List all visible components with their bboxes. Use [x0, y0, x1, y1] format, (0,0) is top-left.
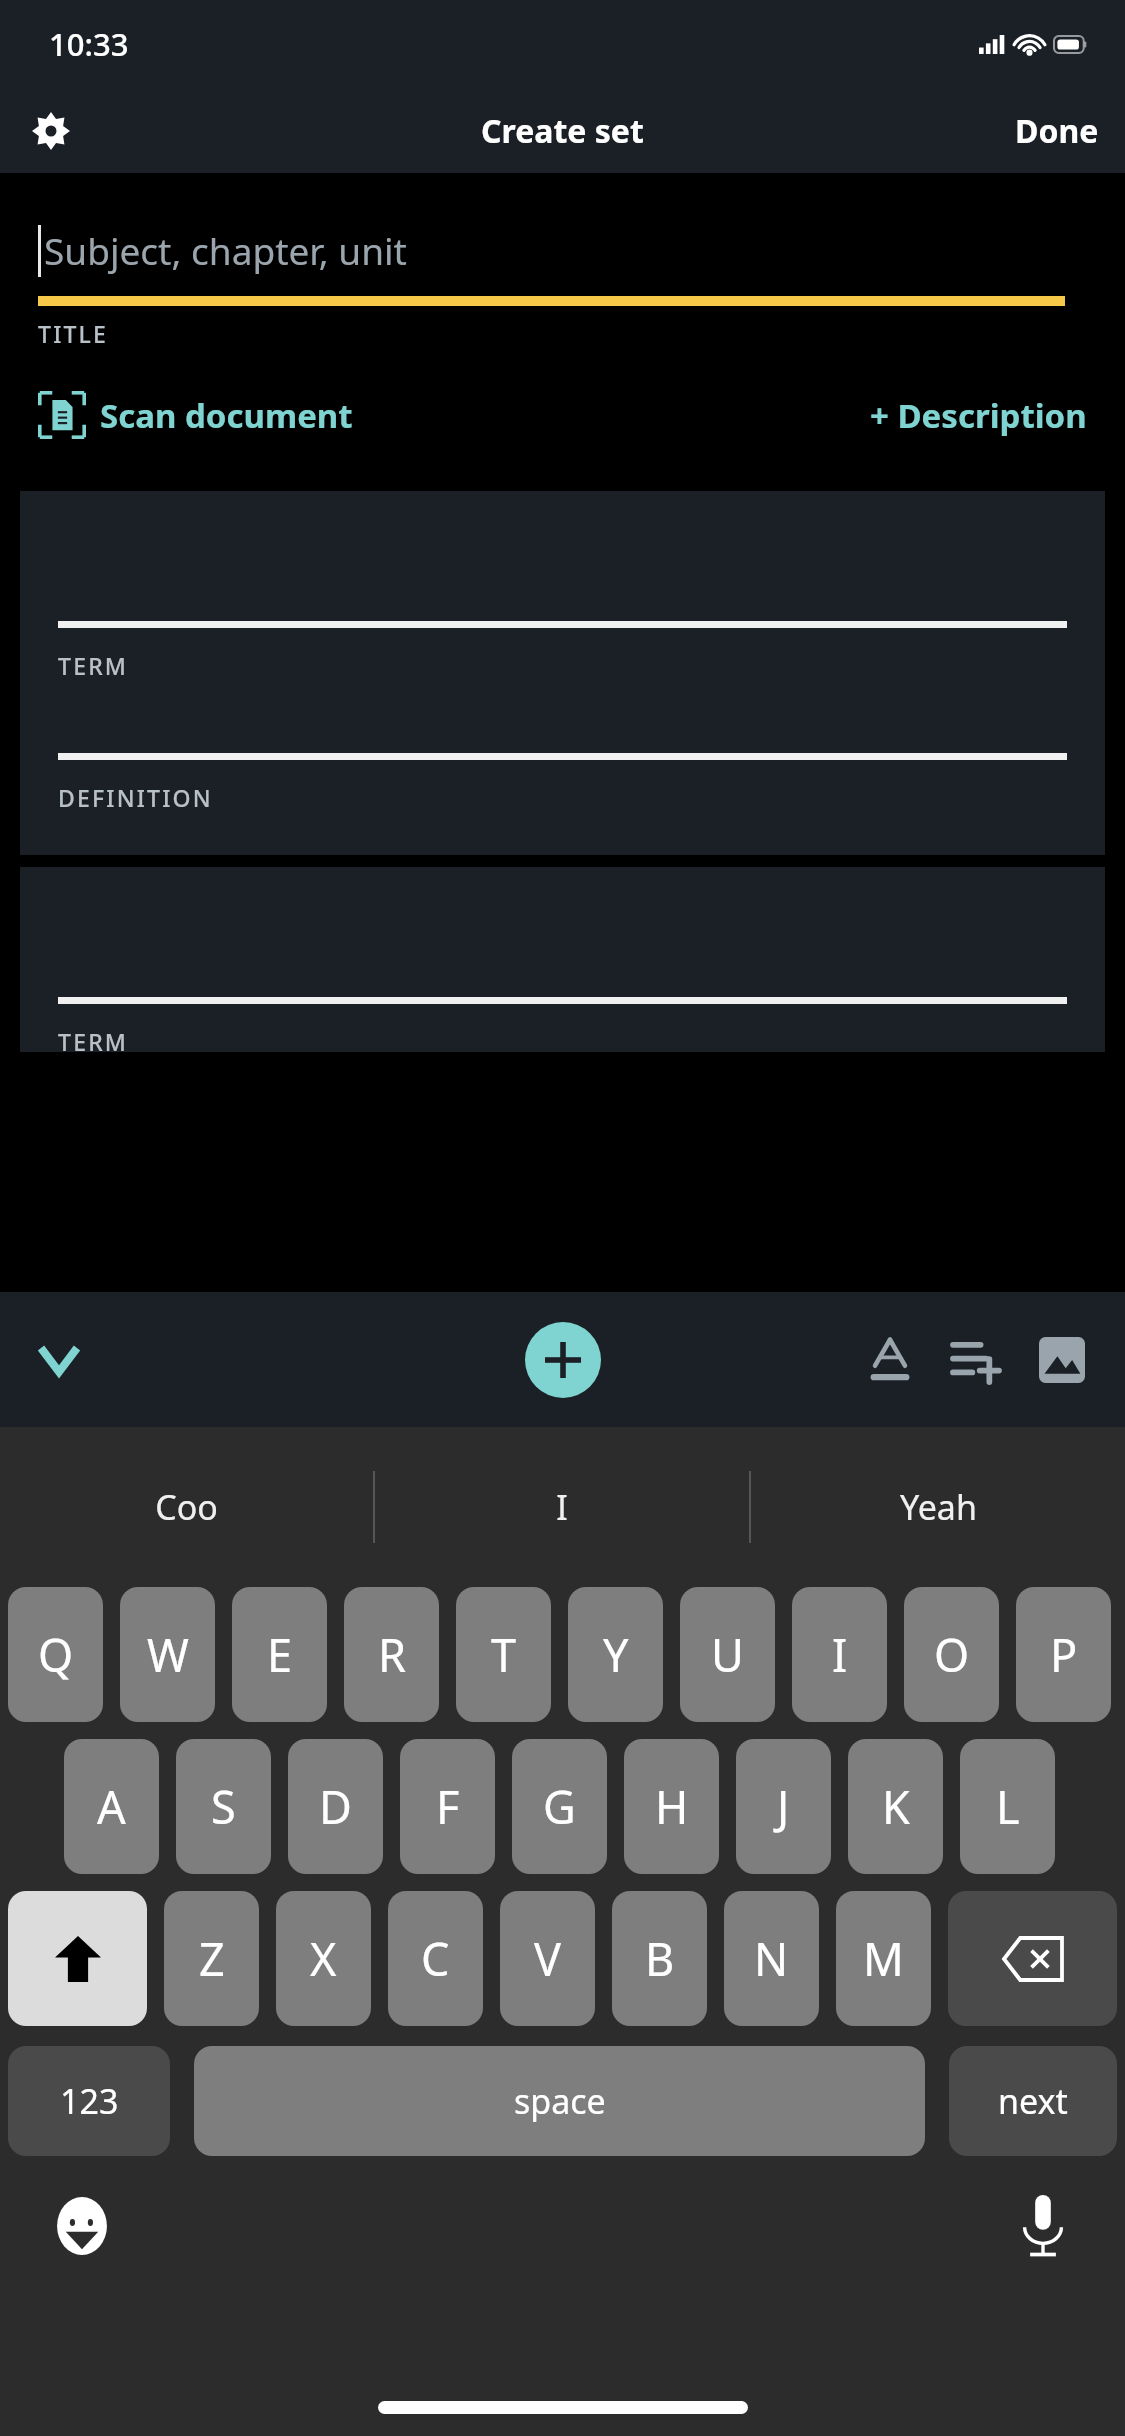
button[interactable]: next — [949, 2046, 1117, 2156]
staticText: J — [777, 1776, 790, 1837]
staticText: K — [882, 1776, 910, 1837]
button[interactable]: Q — [8, 1587, 103, 1722]
button[interactable]: Add card — [525, 1322, 601, 1398]
button[interactable]: R — [344, 1587, 439, 1722]
button[interactable]: + Description — [870, 393, 1087, 438]
staticText: T — [491, 1624, 517, 1685]
staticText: Yeah — [900, 1484, 977, 1530]
staticText: 123 — [60, 2078, 119, 2124]
staticText: M — [863, 1928, 904, 1989]
button[interactable]: Voice input — [1003, 2186, 1083, 2266]
button[interactable]: N — [724, 1891, 819, 2026]
staticText: F — [436, 1776, 460, 1837]
staticText: DEFINITION — [58, 782, 213, 813]
button[interactable]: 123 — [8, 2046, 170, 2156]
staticText: TERM — [58, 1026, 129, 1052]
button[interactable]: M — [836, 1891, 931, 2026]
button[interactable]: TERM — [20, 491, 1105, 855]
staticText: U — [711, 1624, 744, 1685]
button[interactable]: S — [176, 1739, 271, 1874]
staticText: 10:33 — [49, 23, 129, 65]
button[interactable]: I — [375, 1427, 749, 1587]
button[interactable]: Shift — [8, 1891, 147, 2026]
button[interactable]: E — [232, 1587, 327, 1722]
button[interactable]: V — [500, 1891, 595, 2026]
staticText: Coo — [155, 1484, 218, 1530]
button[interactable]: K — [848, 1739, 943, 1874]
staticText: I — [556, 1484, 568, 1530]
staticText: Done — [1015, 109, 1099, 153]
button[interactable]: C — [388, 1891, 483, 2026]
staticText: E — [267, 1624, 293, 1685]
button[interactable]: Collapse keyboard — [24, 1325, 94, 1395]
button[interactable]: P — [1016, 1587, 1111, 1722]
button[interactable]: O — [904, 1587, 999, 1722]
staticText: W — [147, 1624, 189, 1685]
staticText: TITLE — [38, 318, 109, 349]
button[interactable]: Coo — [0, 1427, 373, 1587]
staticText: space — [514, 2078, 606, 2124]
staticText: Scan document — [100, 393, 353, 438]
button[interactable]: TERM — [20, 867, 1105, 1052]
button[interactable]: Backspace — [948, 1891, 1117, 2026]
button[interactable]: I — [792, 1587, 887, 1722]
staticText: R — [378, 1624, 406, 1685]
button[interactable]: U — [680, 1587, 775, 1722]
staticText: Subject, chapter, unit — [44, 225, 407, 275]
button[interactable]: X — [276, 1891, 371, 2026]
button[interactable]: J — [736, 1739, 831, 1874]
button[interactable]: Emoji — [42, 2186, 122, 2266]
staticText: X — [310, 1928, 337, 1989]
button[interactable]: Y — [568, 1587, 663, 1722]
button[interactable]: Text formatting — [847, 1317, 933, 1403]
staticText: S — [211, 1776, 236, 1837]
button[interactable]: T — [456, 1587, 551, 1722]
staticText: O — [934, 1624, 970, 1685]
button[interactable]: D — [288, 1739, 383, 1874]
staticText: TERM — [58, 650, 129, 681]
staticText: V — [534, 1928, 562, 1989]
staticText: I — [832, 1624, 848, 1685]
staticText: B — [645, 1928, 675, 1989]
button[interactable]: F — [400, 1739, 495, 1874]
staticText: Create set — [481, 109, 644, 153]
button[interactable]: W — [120, 1587, 215, 1722]
button[interactable]: Scan document — [38, 391, 353, 439]
staticText: L — [996, 1776, 1020, 1837]
button[interactable]: G — [512, 1739, 607, 1874]
staticText: A — [97, 1776, 126, 1837]
staticText: + Description — [870, 393, 1087, 438]
button[interactable]: Z — [164, 1891, 259, 2026]
staticText: P — [1050, 1624, 1078, 1685]
button[interactable]: Add list item — [933, 1317, 1019, 1403]
button[interactable]: Yeah — [751, 1427, 1125, 1587]
staticText: C — [421, 1928, 450, 1989]
button[interactable]: Add image — [1019, 1317, 1105, 1403]
button[interactable]: space — [194, 2046, 925, 2156]
button[interactable]: L — [960, 1739, 1055, 1874]
staticText: H — [655, 1776, 689, 1837]
staticText: G — [543, 1776, 576, 1837]
button[interactable]: H — [624, 1739, 719, 1874]
button[interactable]: B — [612, 1891, 707, 2026]
staticText: Y — [603, 1624, 629, 1685]
staticText: Z — [199, 1928, 225, 1989]
button[interactable]: Done — [989, 95, 1125, 167]
staticText: D — [319, 1776, 352, 1837]
staticText: N — [754, 1928, 789, 1989]
button[interactable]: A — [64, 1739, 159, 1874]
staticText: next — [998, 2078, 1068, 2124]
button[interactable]: Settings — [20, 100, 82, 162]
staticText: Q — [38, 1624, 74, 1685]
